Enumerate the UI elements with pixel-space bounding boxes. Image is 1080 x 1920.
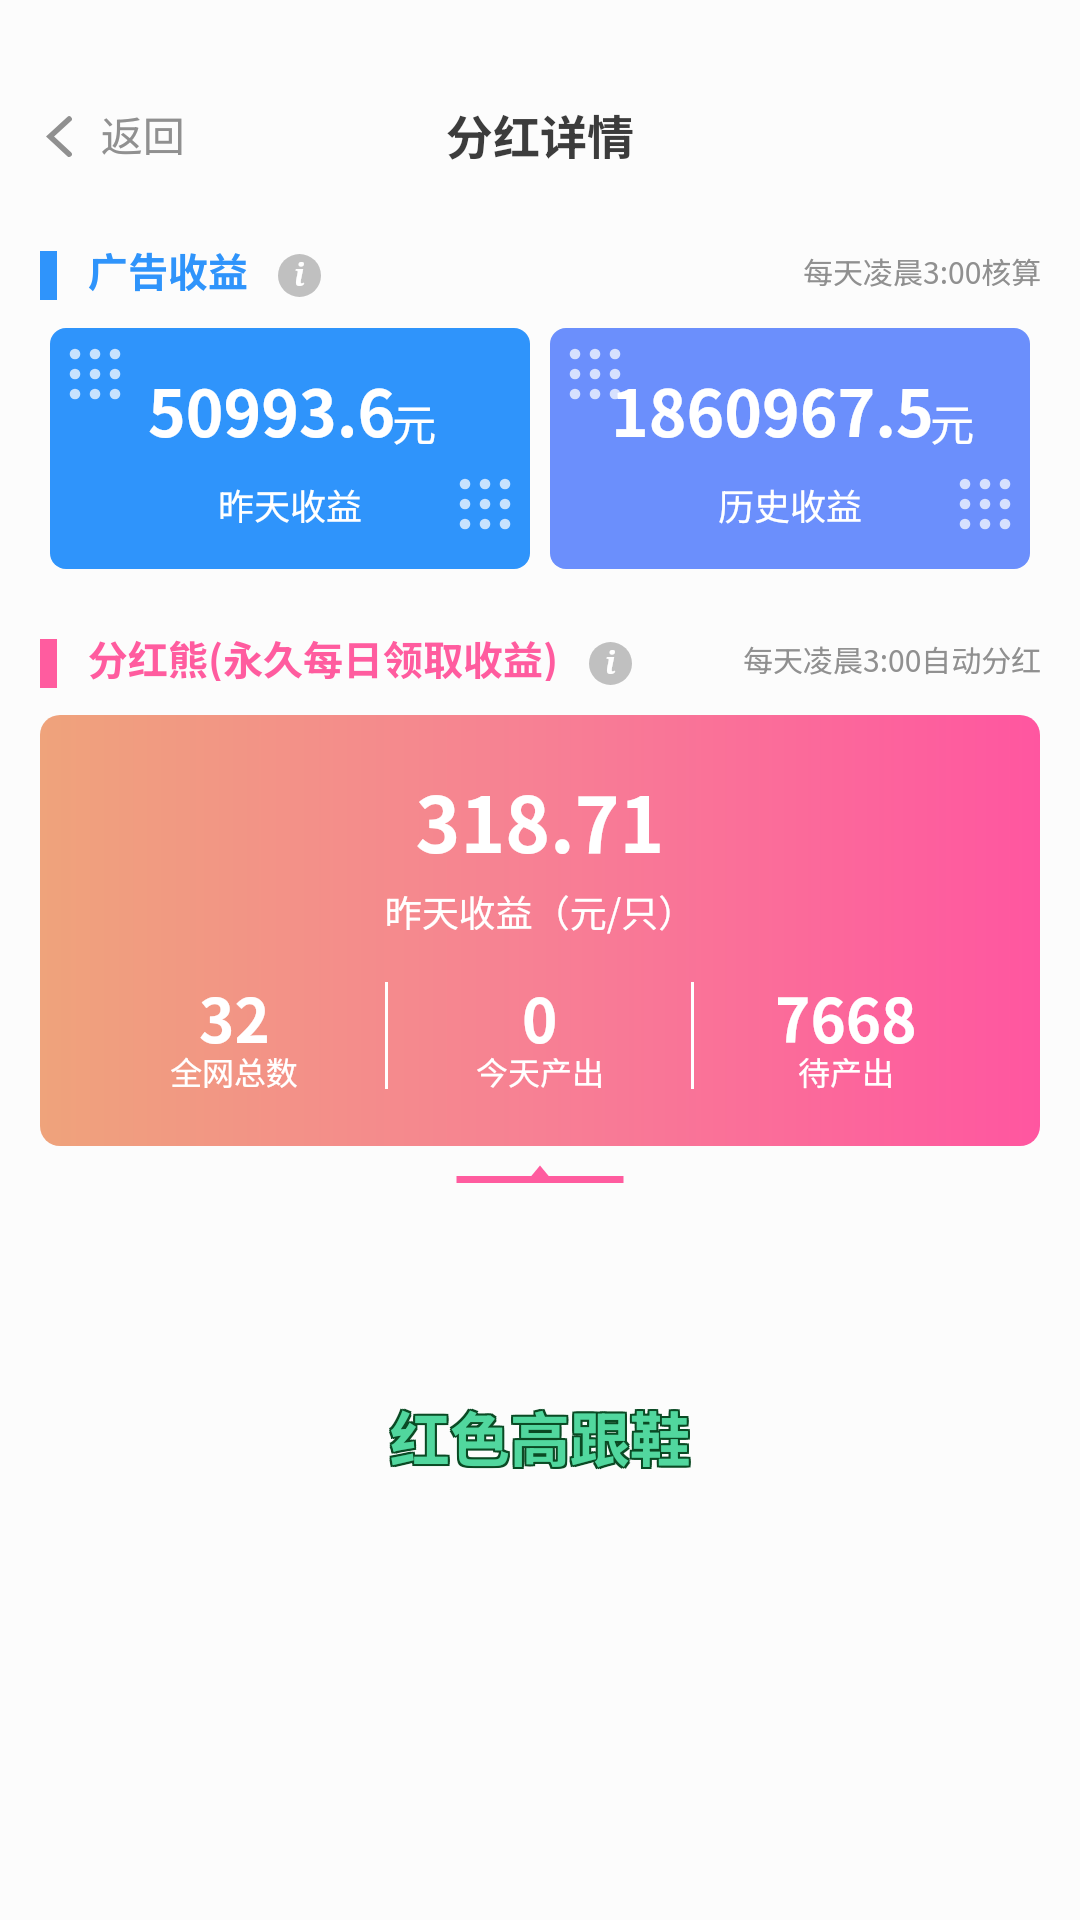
staticText: 红色高跟鞋 [0, 1392, 1078, 1479]
staticText: 广告收益 [88, 241, 248, 293]
button[interactable]: Info [278, 254, 321, 297]
button[interactable]: 1860967.5 [550, 328, 1030, 569]
staticText: 每天凌晨3:00自动分红 [743, 637, 1042, 680]
staticText: 50993.6 [148, 363, 396, 456]
staticText: 红色高跟鞋 [2, 1392, 1080, 1479]
staticText: 分红熊(永久每日领取收益) [88, 629, 559, 681]
staticText: 每天凌晨3:00核算 [803, 249, 1042, 292]
staticText: 昨天收益 [50, 478, 530, 530]
staticText: 1860967.5 [611, 363, 934, 456]
staticText: 318.71 [40, 765, 1040, 875]
staticText: 元 [392, 390, 436, 454]
staticText: 红色高跟鞋 [2, 1394, 1080, 1481]
staticText: 0 [522, 973, 558, 1060]
button[interactable]: 50993.6 [50, 328, 530, 569]
staticText: 返回 [101, 103, 186, 164]
staticText: 元 [930, 390, 974, 454]
staticText: 红色高跟鞋 [2, 1390, 1080, 1477]
staticText: 红色高跟鞋 [0, 1390, 1078, 1477]
staticText: 待产出 [798, 1048, 895, 1094]
button[interactable]: Info [589, 642, 632, 685]
staticText: 红色高跟鞋 [0, 1394, 1078, 1481]
staticText: 昨天收益（元/只） [40, 884, 1040, 938]
staticText: 今天产出 [476, 1048, 605, 1094]
staticText: 红色高跟鞋 [0, 1394, 1080, 1481]
staticText: i [605, 642, 616, 683]
button[interactable]: Back [32, 95, 194, 172]
staticText: 红色高跟鞋 [0, 1392, 1080, 1479]
staticText: 红色高跟鞋 [0, 1390, 1080, 1477]
staticText: 全网总数 [170, 1048, 299, 1094]
staticText: 历史收益 [550, 478, 1030, 530]
staticText: i [294, 254, 305, 295]
button[interactable]: 318.71 [40, 715, 1040, 1146]
staticText: 分红详情 [0, 100, 1080, 168]
staticText: 32 [199, 973, 270, 1060]
staticText: 7668 [775, 973, 917, 1060]
